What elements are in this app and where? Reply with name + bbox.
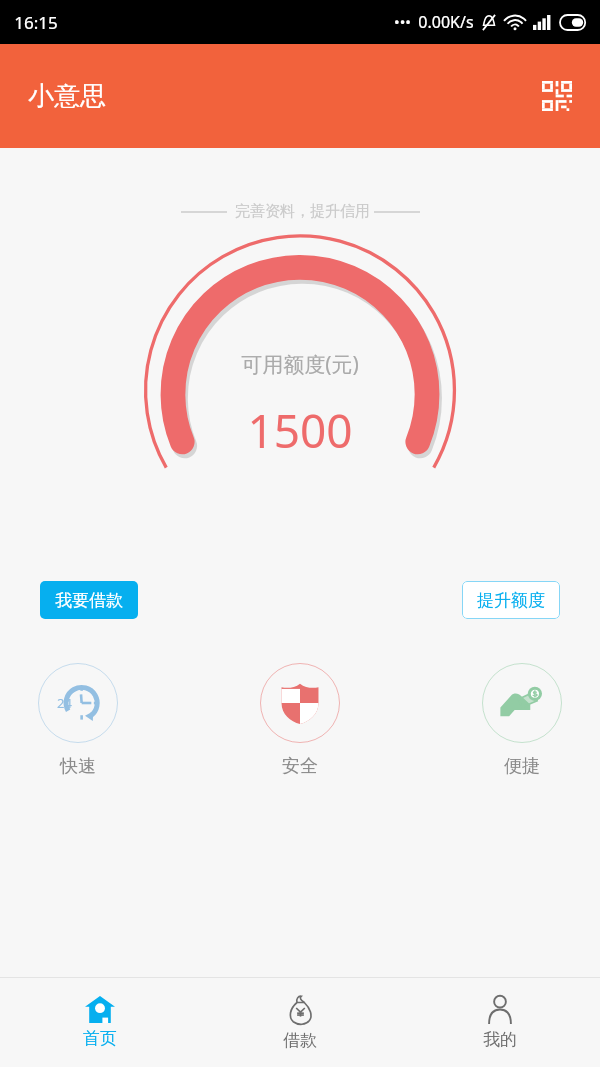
- button[interactable]: 我要借款: [40, 581, 138, 619]
- staticText: 安全: [282, 755, 318, 778]
- staticText: 首页: [83, 1028, 117, 1049]
- staticText: 1500: [247, 399, 353, 462]
- staticText: 我要借款: [55, 590, 123, 611]
- staticText: 24: [57, 694, 72, 712]
- button[interactable]: Scan QR code: [534, 73, 580, 119]
- button[interactable]: 提升额度: [462, 581, 560, 619]
- button[interactable]: 借款: [200, 978, 400, 1067]
- staticText: •••: [394, 12, 411, 32]
- staticText: 0.00K/s: [418, 11, 474, 33]
- staticText: 提升额度: [477, 590, 545, 611]
- staticText: 16:15: [14, 11, 58, 34]
- staticText: 可用额度(元): [241, 350, 359, 379]
- staticText: 完善资料，提升信用: [235, 202, 370, 221]
- button[interactable]: 我的: [400, 978, 600, 1067]
- staticText: 便捷: [504, 755, 540, 778]
- button[interactable]: 首页: [0, 978, 200, 1067]
- button[interactable]: 便捷: [472, 663, 572, 778]
- staticText: 借款: [283, 1030, 317, 1051]
- staticText: 我的: [483, 1029, 517, 1050]
- staticText: 快速: [60, 755, 96, 778]
- button[interactable]: 24: [28, 663, 128, 778]
- staticText: 小意思: [28, 80, 106, 113]
- button[interactable]: 安全: [250, 663, 350, 778]
